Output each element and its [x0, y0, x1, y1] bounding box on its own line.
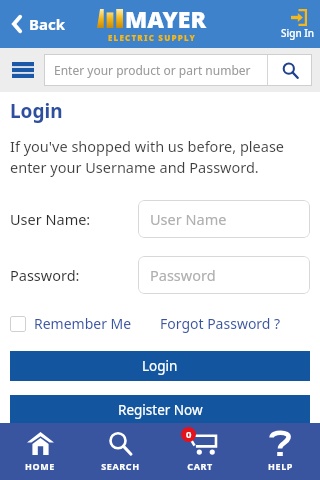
button[interactable]: Login [10, 351, 310, 381]
staticText: 0 [186, 428, 192, 441]
button[interactable]: Sign In [276, 6, 320, 43]
staticText: Back [29, 14, 66, 34]
staticText: MAYER [125, 3, 207, 34]
button[interactable]: Password [138, 256, 310, 294]
staticText: Register Now [118, 401, 203, 419]
staticText: ELECTRIC SUPPLY [108, 32, 197, 43]
staticText: Password [150, 265, 216, 285]
button[interactable]: Register Now [10, 395, 310, 425]
staticText: CART [187, 460, 213, 472]
button[interactable]: Menu [8, 55, 38, 85]
button[interactable]: Back [6, 8, 70, 40]
staticText: User Name [150, 209, 227, 229]
button[interactable]: User Name [138, 200, 310, 238]
staticText: User Name: [10, 209, 138, 229]
button[interactable]: SEARCH [80, 423, 160, 480]
staticText: If you've shopped with us before, please… [10, 136, 285, 178]
button[interactable]: 0 [160, 423, 240, 480]
staticText: SEARCH [101, 460, 140, 472]
staticText: Login [10, 98, 63, 124]
staticText: Enter your product or part number [54, 62, 251, 78]
button[interactable]: Enter your product or part number [44, 54, 267, 86]
staticText: HELP [268, 460, 293, 472]
staticText: Sign In [281, 26, 315, 40]
staticText: Password: [10, 265, 138, 285]
button[interactable]: Forgot Password ? [160, 314, 281, 333]
staticText: Remember Me [34, 314, 132, 333]
button[interactable]: Remember Me [10, 314, 132, 333]
button[interactable]: Search [268, 54, 312, 86]
button[interactable]: HOME [0, 423, 80, 480]
button[interactable]: HELP [240, 423, 320, 480]
staticText: HOME [25, 460, 55, 472]
staticText: Login [142, 357, 178, 375]
